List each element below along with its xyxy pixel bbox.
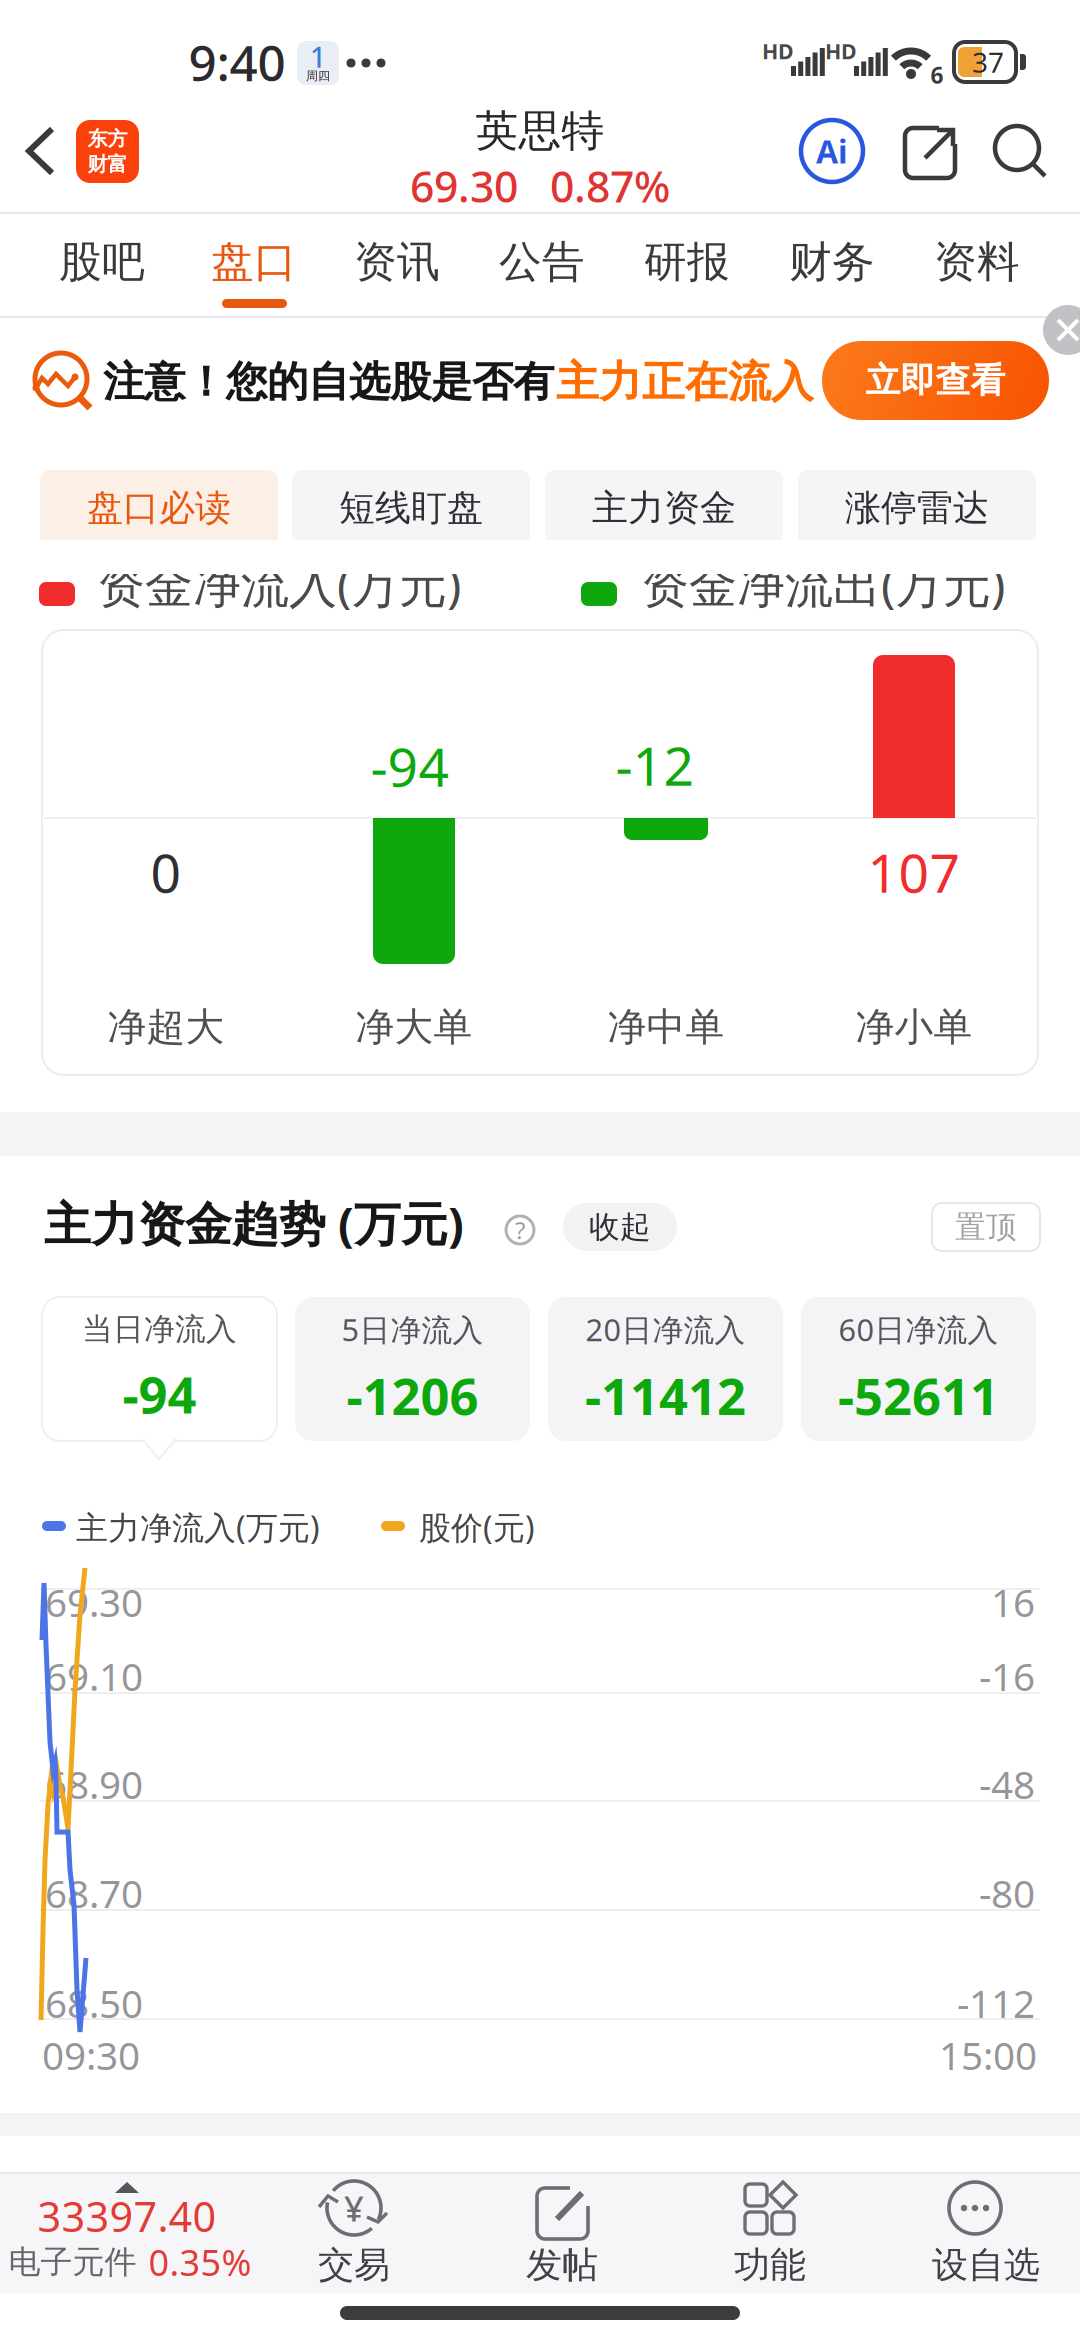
staticText: 设自选: [932, 2243, 1040, 2287]
staticText: 33397.40: [37, 2189, 216, 2243]
staticText: 注意！您的自选股是否有: [103, 357, 554, 407]
button[interactable]: 研报: [622, 222, 752, 302]
staticText: HD: [762, 37, 794, 65]
staticText: 60日净流入: [838, 1309, 998, 1350]
staticText: 股吧: [59, 236, 145, 288]
staticText: -12: [615, 730, 694, 800]
staticText: -16: [979, 1650, 1035, 1702]
staticText: 财富: [87, 152, 127, 177]
staticText: 69.30: [45, 1576, 143, 1628]
button[interactable]: Ai 助手: [801, 120, 863, 182]
staticText: 盘口: [211, 236, 297, 288]
button[interactable]: 股吧: [37, 222, 167, 302]
staticText: 资金净流出(万元): [641, 552, 1005, 616]
staticText: 涨停雷达: [845, 486, 989, 530]
staticText: 0.35%: [148, 2238, 251, 2286]
button[interactable]: 设自选: [902, 2176, 1072, 2295]
staticText: Ai: [816, 130, 848, 172]
button[interactable]: 帮助: [504, 1214, 536, 1246]
button[interactable]: 功能: [690, 2176, 840, 2295]
staticText: 净超大: [107, 1003, 224, 1051]
button[interactable]: 20日净流入: [548, 1297, 783, 1441]
button[interactable]: Close: [1043, 305, 1080, 355]
staticText: -11412: [585, 1362, 746, 1429]
staticText: 资金净流入(万元): [97, 552, 461, 616]
staticText: 英思特: [475, 105, 604, 157]
staticText: 净中单: [607, 1003, 724, 1051]
staticText: 20日净流入: [585, 1309, 745, 1350]
button[interactable]: 电子元件指数: [0, 2174, 270, 2293]
staticText: 主力正在流入: [556, 356, 814, 408]
staticText: 5日净流入: [341, 1309, 483, 1350]
staticText: 周四: [306, 69, 330, 83]
staticText: 置顶: [955, 1208, 1017, 1246]
staticText: 发帖: [526, 2243, 598, 2287]
staticText: 股价(元): [419, 1506, 535, 1548]
staticText: 净小单: [855, 1003, 972, 1051]
staticText: 盘口必读: [87, 486, 231, 530]
button[interactable]: 5日净流入: [295, 1297, 530, 1441]
staticText: 交易: [318, 2243, 390, 2287]
staticText: 功能: [734, 2243, 806, 2287]
button[interactable]: 涨停雷达: [798, 470, 1036, 546]
staticText: 68.90: [45, 1758, 143, 1810]
staticText: -48: [979, 1758, 1035, 1810]
staticText: 1: [310, 38, 326, 76]
staticText: 主力资金: [592, 486, 736, 530]
staticText: -94: [370, 731, 449, 801]
button[interactable]: 资讯: [332, 222, 462, 302]
button[interactable]: 发帖: [487, 2176, 637, 2295]
button[interactable]: 盘口: [189, 222, 319, 302]
button[interactable]: Search: [993, 124, 1047, 178]
staticText: 09:30: [42, 2029, 140, 2081]
staticText: 主力资金趋势 (万元): [44, 1192, 464, 1254]
button[interactable]: Share: [903, 126, 957, 180]
button[interactable]: 短线盯盘: [292, 470, 530, 546]
staticText: 东方: [87, 126, 127, 151]
staticText: 立即查看: [865, 359, 1005, 402]
staticText: 37: [972, 43, 1004, 81]
staticText: 107: [867, 837, 960, 907]
button[interactable]: 立即查看: [822, 341, 1049, 420]
staticText: 财务: [789, 236, 875, 288]
staticText: 资料: [934, 236, 1020, 288]
staticText: -1206: [346, 1362, 478, 1429]
staticText: HD: [825, 37, 857, 65]
staticText: 68.70: [45, 1867, 143, 1919]
button[interactable]: 收起: [563, 1203, 677, 1251]
button[interactable]: 60日净流入: [801, 1297, 1036, 1441]
staticText: 主力净流入(万元): [76, 1506, 320, 1548]
button[interactable]: 资料: [912, 222, 1042, 302]
staticText: ¥: [344, 2185, 364, 2231]
button[interactable]: 东方财富: [76, 120, 139, 183]
staticText: -112: [957, 1977, 1035, 2029]
staticText: 公告: [499, 236, 585, 288]
staticText: 69.30: [410, 158, 518, 214]
staticText: ?: [515, 1214, 525, 1246]
staticText: 短线盯盘: [339, 486, 483, 530]
staticText: 资讯: [354, 236, 440, 288]
staticText: 收起: [589, 1208, 651, 1246]
button[interactable]: 当日净流入: [42, 1297, 277, 1441]
staticText: 0.87%: [550, 158, 670, 214]
button[interactable]: 财务: [767, 222, 897, 302]
staticText: 16: [991, 1576, 1035, 1628]
staticText: 68.50: [45, 1977, 143, 2029]
staticText: 电子元件: [8, 2242, 136, 2282]
staticText: -52611: [838, 1362, 999, 1429]
staticText: 0: [150, 837, 181, 907]
staticText: 净大单: [355, 1003, 472, 1051]
staticText: -80: [979, 1867, 1035, 1919]
staticText: -94: [122, 1360, 196, 1427]
staticText: 研报: [644, 236, 730, 288]
button[interactable]: 公告: [477, 222, 607, 302]
button[interactable]: 交易: [279, 2176, 429, 2295]
button[interactable]: 盘口必读: [40, 470, 278, 546]
staticText: 9:40: [188, 29, 285, 95]
staticText: 15:00: [939, 2029, 1037, 2081]
button[interactable]: 置顶: [932, 1203, 1040, 1251]
staticText: 当日净流入: [82, 1310, 237, 1348]
button[interactable]: 主力资金: [545, 470, 783, 546]
staticText: 69.10: [45, 1650, 143, 1702]
button[interactable]: Back: [27, 127, 55, 175]
